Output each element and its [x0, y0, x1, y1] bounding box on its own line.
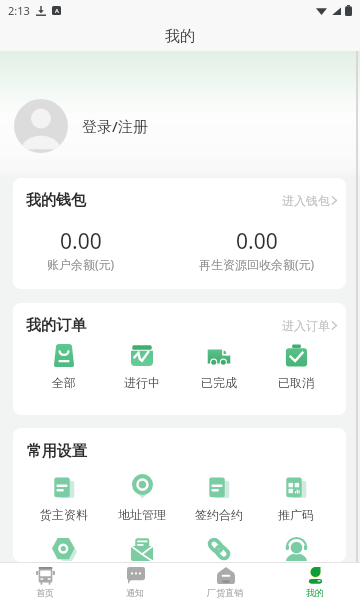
- button[interactable]: 进入钱包: [282, 193, 338, 208]
- button[interactable]: 全部: [25, 343, 103, 390]
- staticText: 登录/注册: [82, 116, 148, 136]
- button[interactable]: 邀请好友: [180, 536, 257, 562]
- button[interactable]: 首页: [0, 563, 90, 600]
- staticText: 我的: [165, 27, 195, 46]
- button[interactable]: 已完成: [180, 343, 257, 390]
- button[interactable]: 进入订单: [282, 318, 338, 333]
- staticText: 进入钱包: [282, 193, 330, 208]
- button[interactable]: 货主资料: [25, 475, 103, 522]
- staticText: 再生资源回收余额(元): [199, 256, 315, 272]
- button[interactable]: 厂货直销: [180, 563, 270, 600]
- staticText: 已完成: [201, 375, 237, 390]
- button[interactable]: 意见反馈: [103, 536, 180, 562]
- staticText: 进入订单: [282, 318, 330, 333]
- button[interactable]: 客服中心: [257, 536, 334, 562]
- button[interactable]: 地址管理: [103, 475, 180, 522]
- button[interactable]: 推广码: [257, 475, 334, 522]
- staticText: 常用设置: [27, 442, 87, 461]
- staticText: 货主资料: [40, 507, 88, 522]
- staticText: 已取消: [278, 375, 314, 390]
- button[interactable]: 通知: [90, 563, 180, 600]
- staticText: 厂货直销: [207, 587, 243, 598]
- staticText: 首页: [36, 587, 54, 598]
- staticText: 签约合约: [195, 507, 243, 522]
- staticText: 我的钱包: [26, 191, 86, 210]
- staticText: 进行中: [124, 375, 160, 390]
- staticText: 我的: [306, 587, 324, 598]
- staticText: 2:13: [8, 3, 30, 18]
- staticText: 地址管理: [118, 507, 166, 522]
- staticText: 我的订单: [26, 316, 86, 335]
- staticText: 通知: [126, 587, 144, 598]
- staticText: 账户余额(元): [47, 256, 115, 272]
- staticText: A: [55, 7, 59, 15]
- button[interactable]: 回收管理: [25, 536, 103, 562]
- button[interactable]: 已取消: [257, 343, 334, 390]
- staticText: 0.00: [60, 227, 102, 256]
- button[interactable]: 进行中: [103, 343, 180, 390]
- button[interactable]: 我的: [270, 563, 360, 600]
- button[interactable]: 签约合约: [180, 475, 257, 522]
- staticText: 全部: [52, 375, 76, 390]
- staticText: 推广码: [278, 507, 314, 522]
- staticText: 0.00: [236, 227, 278, 256]
